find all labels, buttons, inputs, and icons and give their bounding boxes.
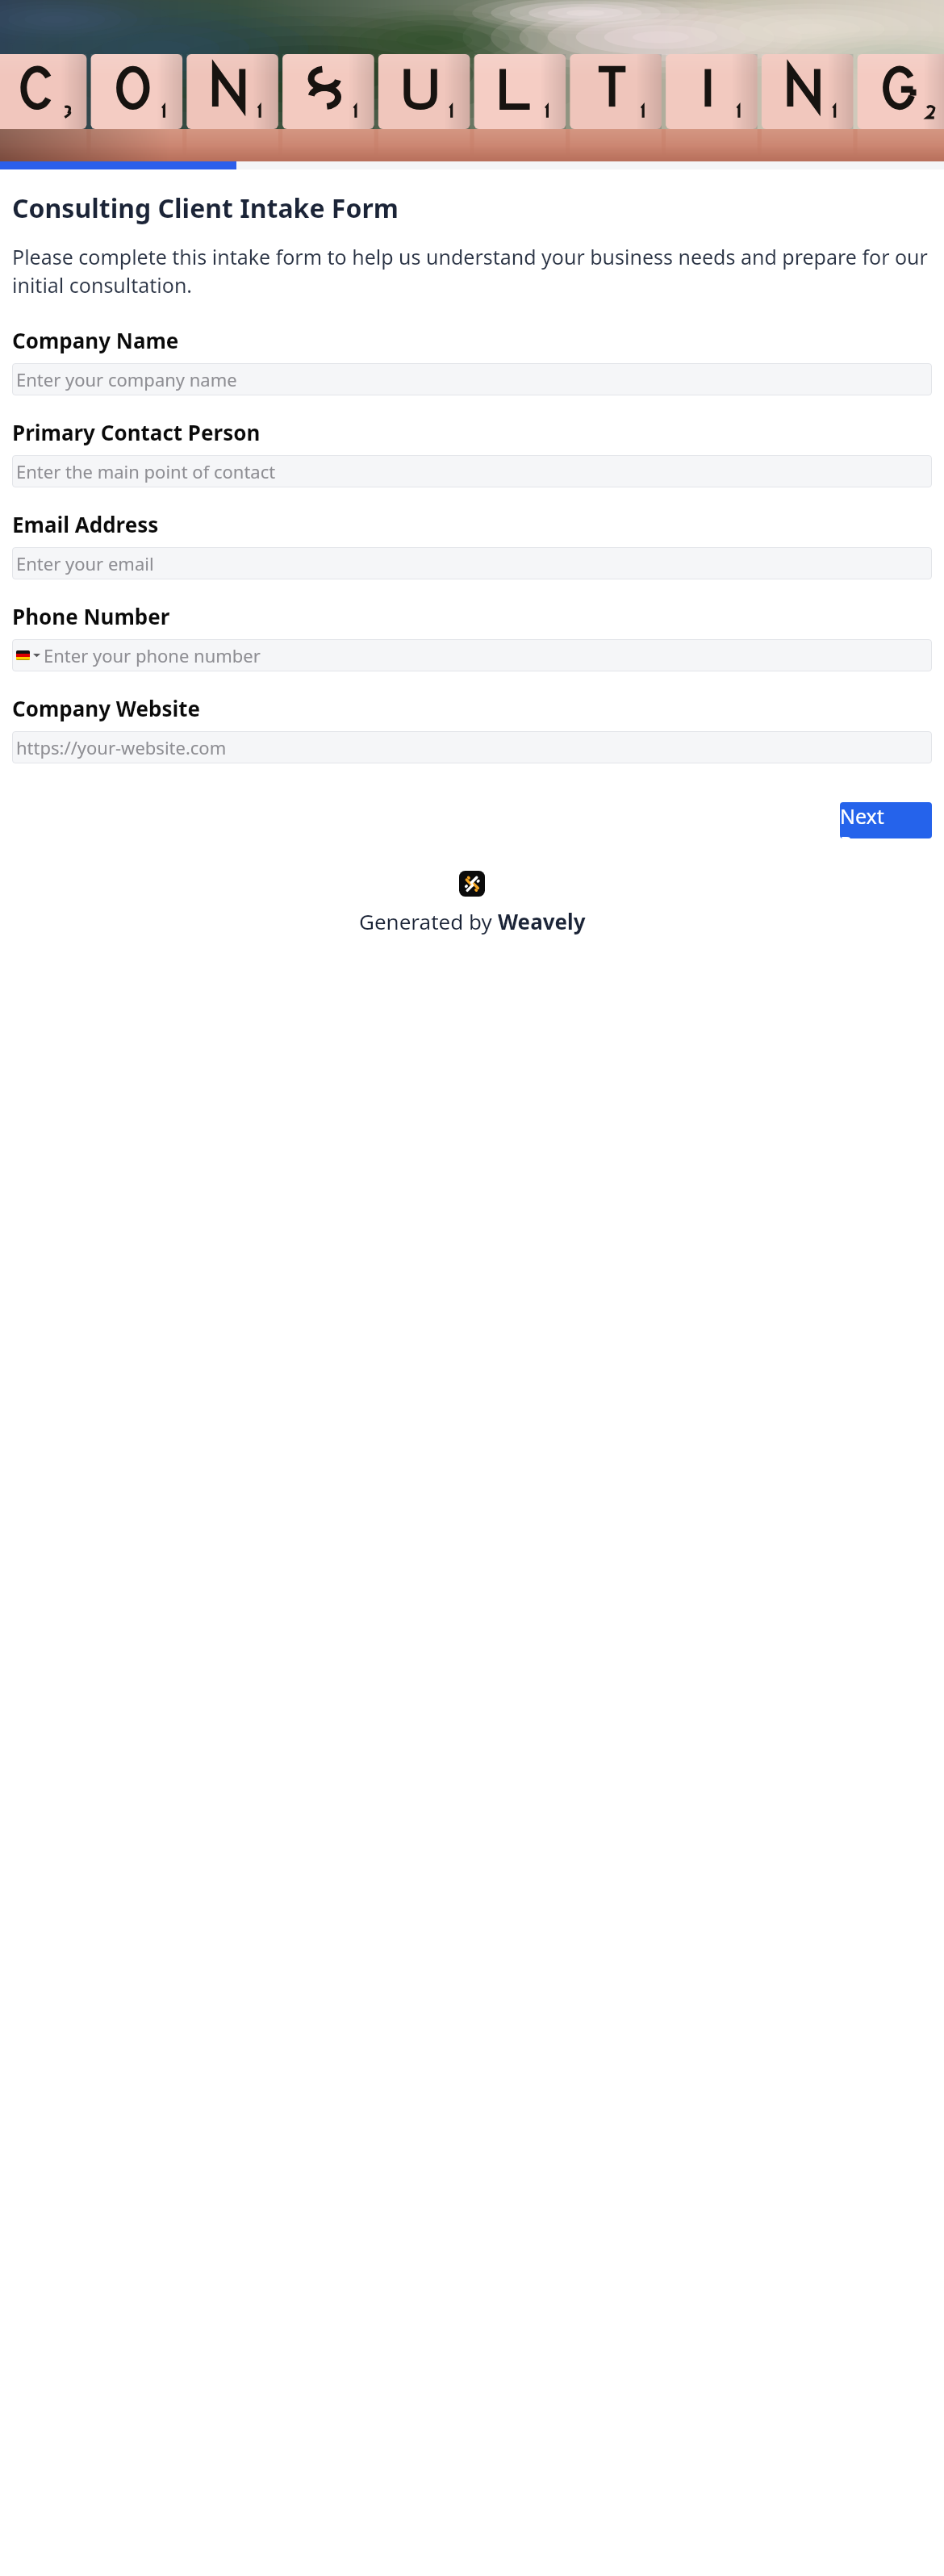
- button[interactable]: Weavely logo: [459, 871, 485, 897]
- staticText: Generated by: [359, 907, 498, 935]
- staticText: https://your-website.com: [16, 735, 227, 759]
- staticText: Next Page: [840, 802, 932, 838]
- staticText: Please complete this intake form to help…: [12, 243, 932, 299]
- staticText: Enter your email: [16, 551, 154, 575]
- staticText: Primary Contact Person: [12, 418, 261, 446]
- staticText: Enter your phone number: [44, 643, 261, 667]
- staticText: Company Name: [12, 326, 179, 354]
- button[interactable]: Enter your phone number: [12, 639, 932, 671]
- staticText: Email Address: [12, 510, 159, 538]
- staticText: Enter your company name: [16, 367, 237, 391]
- staticText: Phone Number: [12, 602, 170, 630]
- staticText: Company Website: [12, 694, 201, 722]
- button[interactable]: Enter your email: [12, 547, 932, 579]
- staticText: Enter the main point of contact: [16, 459, 276, 483]
- button[interactable]: https://your-website.com: [12, 731, 932, 763]
- button[interactable]: Enter your company name: [12, 363, 932, 395]
- staticText: Weavely: [498, 907, 586, 935]
- button[interactable]: Next Page: [840, 802, 932, 838]
- staticText: Consulting Client Intake Form: [12, 190, 399, 226]
- button[interactable]: Enter the main point of contact: [12, 455, 932, 487]
